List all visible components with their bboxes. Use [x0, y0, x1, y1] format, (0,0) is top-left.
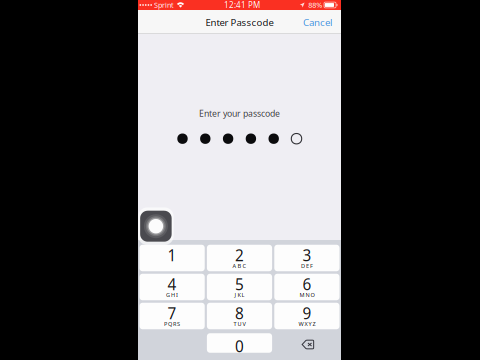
staticText: 3 — [302, 245, 311, 266]
button[interactable]: 3 — [274, 245, 339, 271]
staticText: 1 — [168, 245, 177, 266]
button[interactable]: Cancel — [293, 10, 341, 34]
staticText: Sprint — [154, 0, 174, 10]
button[interactable]: 8 — [207, 303, 272, 329]
button[interactable]: 6 — [274, 274, 339, 300]
staticText: W X Y Z — [298, 320, 315, 327]
button[interactable]: 1 — [139, 245, 205, 271]
staticText: A B C — [232, 262, 246, 269]
staticText: J K L — [234, 291, 244, 298]
staticText: 12:41 PM — [224, 0, 260, 10]
staticText: 9 — [302, 303, 311, 324]
staticText: D E F — [301, 262, 313, 269]
button[interactable]: 9 — [274, 303, 339, 329]
button[interactable]: 5 — [207, 274, 272, 300]
button[interactable]: 2 — [207, 245, 272, 271]
staticText: M N O — [299, 291, 314, 298]
staticText: 2 — [235, 245, 244, 266]
staticText: 8 — [235, 303, 244, 324]
staticText: Enter your passcode — [199, 108, 280, 119]
staticText: P Q R S — [164, 320, 180, 327]
staticText: Cancel — [303, 16, 333, 29]
button[interactable]: 7 — [139, 303, 205, 329]
button[interactable]: AssistiveTouch — [138, 207, 174, 245]
button[interactable]: 4 — [139, 274, 205, 300]
staticText: 0 — [235, 336, 244, 357]
button[interactable]: 0 — [207, 333, 272, 353]
staticText: 5 — [235, 274, 244, 295]
staticText: 7 — [168, 303, 177, 324]
button[interactable]: Delete — [274, 333, 339, 353]
staticText: 6 — [302, 274, 311, 295]
staticText: Enter Passcode — [205, 16, 273, 29]
staticText: T U V — [233, 320, 245, 327]
staticText: 88% — [308, 0, 322, 10]
staticText: G H I — [166, 291, 178, 298]
staticText: 4 — [168, 274, 177, 295]
